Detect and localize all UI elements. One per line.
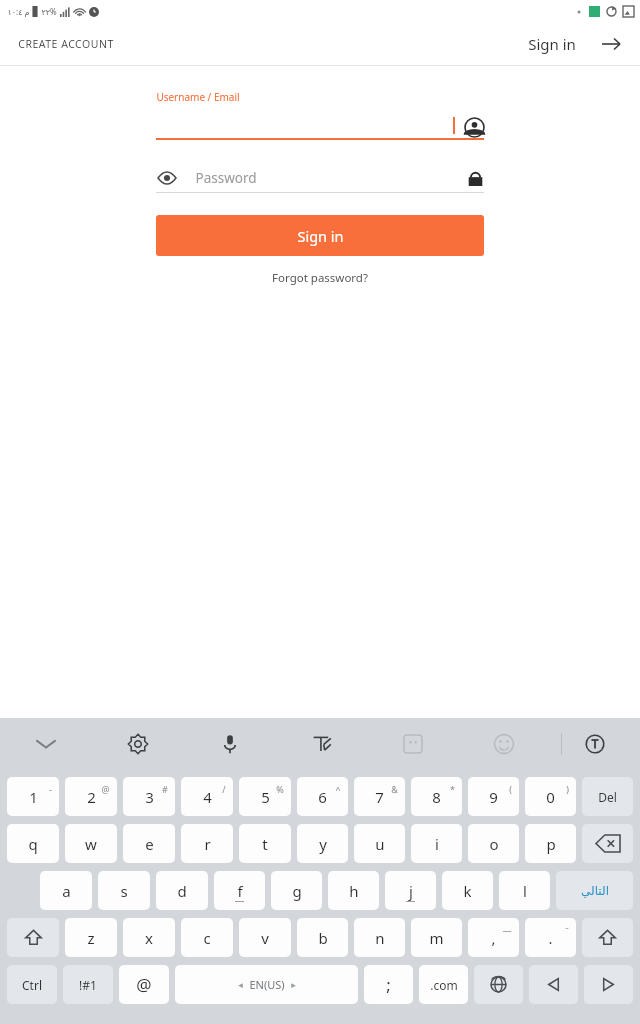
button[interactable]: 0: [525, 777, 576, 816]
button[interactable]: ,: [468, 918, 519, 957]
button[interactable]: q: [7, 824, 59, 863]
button[interactable]: l: [499, 871, 550, 910]
button[interactable]: Show password: [156, 167, 178, 189]
button[interactable]: .: [525, 918, 576, 957]
button[interactable]: [156, 110, 484, 140]
staticText: م ١٠:٤: [6, 6, 31, 17]
button[interactable]: Del: [582, 777, 633, 816]
button[interactable]: Sign in: [520, 26, 584, 62]
staticText: Del: [598, 789, 617, 805]
button[interactable]: 6: [297, 777, 348, 816]
button[interactable]: Shift: [582, 918, 633, 957]
button[interactable]: o: [468, 824, 519, 863]
button[interactable]: 8: [411, 777, 462, 816]
button[interactable]: Move left: [529, 965, 578, 1004]
button[interactable]: Emoji: [458, 718, 549, 770]
button[interactable]: CREATE ACCOUNT: [0, 27, 132, 61]
staticText: p: [546, 834, 556, 854]
button[interactable]: r: [181, 824, 233, 863]
staticText: q: [28, 834, 38, 854]
button[interactable]: Stickers: [367, 718, 458, 770]
button[interactable]: 7: [354, 777, 405, 816]
button[interactable]: 1: [7, 777, 59, 816]
button[interactable]: t: [239, 824, 291, 863]
staticText: z: [87, 928, 95, 948]
staticText: e: [145, 834, 154, 854]
button[interactable]: ;: [364, 965, 413, 1004]
button[interactable]: 4: [181, 777, 233, 816]
button[interactable]: w: [65, 824, 117, 863]
staticText: 1: [29, 787, 38, 807]
button[interactable]: !#1: [63, 965, 113, 1004]
staticText: Sign in: [528, 34, 576, 54]
staticText: h: [349, 881, 359, 901]
button[interactable]: Change language: [474, 965, 523, 1004]
button[interactable]: 9: [468, 777, 519, 816]
button[interactable]: d: [156, 871, 208, 910]
button[interactable]: n: [354, 918, 405, 957]
button[interactable]: 5: [239, 777, 291, 816]
button[interactable]: h: [328, 871, 379, 910]
button[interactable]: Ctrl: [7, 965, 57, 1004]
button[interactable]: p: [525, 824, 576, 863]
button[interactable]: Sign in: [156, 215, 484, 256]
staticText: 7: [375, 787, 384, 807]
button[interactable]: .com: [419, 965, 468, 1004]
staticText: b: [318, 928, 328, 948]
button[interactable]: التالي: [556, 871, 633, 910]
button[interactable]: Voice input: [184, 718, 276, 770]
button[interactable]: y: [297, 824, 348, 863]
staticText: m: [429, 928, 444, 948]
button[interactable]: Backspace: [582, 824, 633, 863]
staticText: %: [276, 783, 284, 795]
button[interactable]: c: [181, 918, 233, 957]
button[interactable]: ◂: [175, 965, 358, 1004]
staticText: 5: [261, 787, 270, 807]
button[interactable]: Handwriting: [276, 718, 367, 770]
button[interactable]: Shift: [7, 918, 59, 957]
staticText: 0: [546, 787, 555, 807]
staticText: ;: [386, 973, 391, 996]
button[interactable]: g: [271, 871, 322, 910]
staticText: t: [262, 834, 268, 854]
button[interactable]: s: [98, 871, 150, 910]
staticText: d: [177, 881, 187, 901]
staticText: ^: [335, 783, 341, 795]
button[interactable]: @: [119, 965, 169, 1004]
button[interactable]: Hide keyboard: [0, 718, 92, 770]
button[interactable]: 2: [65, 777, 117, 816]
button[interactable]: m: [411, 918, 462, 957]
staticText: ˉ: [565, 924, 569, 936]
button[interactable]: v: [239, 918, 291, 957]
button[interactable]: j: [385, 871, 436, 910]
button[interactable]: z: [65, 918, 117, 957]
button[interactable]: i: [411, 824, 462, 863]
staticText: @: [136, 973, 152, 996]
staticText: w: [85, 834, 97, 854]
staticText: 6: [318, 787, 327, 807]
button[interactable]: Move right: [584, 965, 633, 1004]
button[interactable]: f: [214, 871, 265, 910]
staticText: v: [261, 928, 269, 948]
staticText: &: [391, 783, 398, 795]
staticText: .com: [430, 977, 458, 993]
button[interactable]: Show password: [156, 163, 484, 193]
button[interactable]: a: [40, 871, 92, 910]
button[interactable]: k: [442, 871, 493, 910]
staticText: r: [204, 834, 211, 854]
button[interactable]: b: [297, 918, 348, 957]
button[interactable]: x: [123, 918, 175, 957]
button[interactable]: Settings: [92, 718, 184, 770]
staticText: (: [509, 783, 512, 795]
button[interactable]: u: [354, 824, 405, 863]
button[interactable]: Translate: [549, 718, 640, 770]
staticText: Sign in: [297, 226, 344, 246]
button[interactable]: e: [123, 824, 175, 863]
staticText: ٢٢%: [41, 6, 57, 17]
button[interactable]: Forgot password?: [156, 270, 484, 286]
button[interactable]: 3: [123, 777, 175, 816]
staticText: o: [489, 834, 499, 854]
button[interactable]: Next: [598, 31, 624, 57]
staticText: Username / Email: [156, 90, 240, 104]
staticText: @: [101, 783, 110, 795]
